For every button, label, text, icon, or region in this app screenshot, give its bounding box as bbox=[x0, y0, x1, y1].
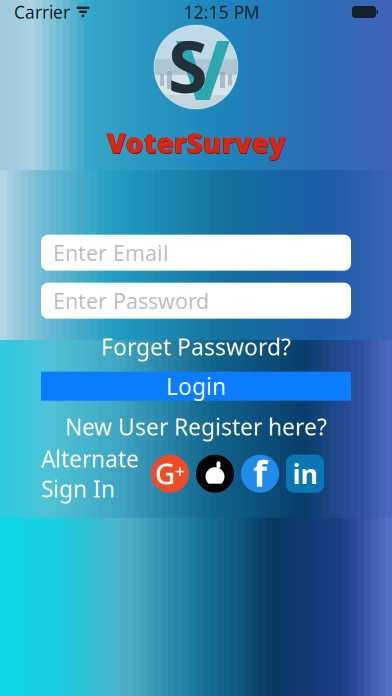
staticText: + bbox=[175, 460, 185, 483]
button[interactable]: New User Register here? bbox=[41, 415, 351, 439]
staticText: S bbox=[168, 17, 208, 113]
staticText: G bbox=[155, 455, 175, 492]
button[interactable]: Forget Password? bbox=[41, 335, 351, 359]
button[interactable]: Login bbox=[41, 372, 351, 401]
staticText: Enter Password bbox=[53, 286, 209, 315]
staticText: Forget Password? bbox=[101, 332, 291, 362]
button[interactable]: Enter Email bbox=[41, 235, 351, 271]
button[interactable]: Sign in with Facebook bbox=[241, 455, 279, 493]
staticText: 12:15 PM bbox=[184, 0, 260, 23]
staticText: Carrier bbox=[14, 0, 70, 23]
staticText: V bbox=[176, 13, 230, 123]
staticText: VoterSurvey bbox=[107, 124, 286, 162]
staticText: f bbox=[253, 449, 267, 497]
button[interactable]: Sign in with Apple bbox=[196, 455, 234, 493]
button[interactable]: Sign in with LinkedIn bbox=[286, 455, 324, 493]
staticText: New User Register here? bbox=[65, 412, 327, 442]
staticText: VoterSurvey bbox=[106, 124, 285, 161]
button[interactable]: Sign in with Google bbox=[151, 455, 189, 493]
staticText: Login bbox=[166, 371, 226, 401]
staticText: in bbox=[292, 456, 317, 491]
button[interactable]: Enter Password bbox=[41, 283, 351, 319]
staticText: Alternate Sign In bbox=[41, 444, 139, 504]
staticText: Enter Email bbox=[53, 238, 169, 267]
